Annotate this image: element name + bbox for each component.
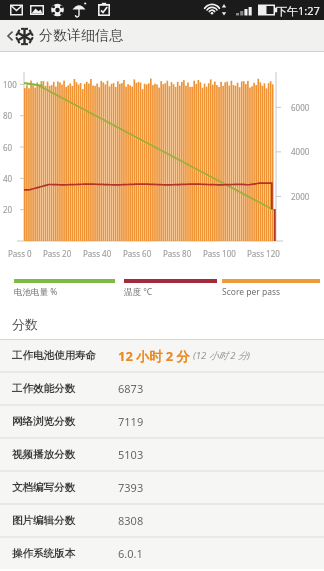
- staticText: 80: [3, 110, 13, 121]
- button[interactable]: 图片编辑分数: [0, 505, 324, 536]
- staticText: 分数详细信息: [39, 27, 123, 45]
- other: Back: [5, 27, 15, 45]
- staticText: 网络浏览分数: [12, 415, 75, 428]
- staticText: 6.0.1: [118, 546, 143, 561]
- staticText: 分数: [12, 316, 38, 332]
- staticText: 温度 °C: [124, 286, 153, 298]
- staticText: 60: [3, 142, 13, 153]
- staticText: 视频播放分数: [12, 448, 75, 461]
- staticText: 文档编写分数: [12, 481, 75, 494]
- staticText: Pass 120: [247, 248, 280, 259]
- button[interactable]: 视频播放分数: [0, 439, 324, 470]
- button[interactable]: 文档编写分数: [0, 472, 324, 503]
- staticText: 7119: [118, 414, 144, 429]
- staticText: 工作效能分数: [12, 382, 75, 395]
- staticText: 5103: [118, 447, 144, 462]
- staticText: 7393: [118, 480, 144, 495]
- staticText: Score per pass: [222, 286, 281, 298]
- staticText: 图片编辑分数: [12, 514, 75, 527]
- staticText: 操作系统版本: [12, 547, 75, 560]
- staticText: 工作电池使用寿命: [12, 349, 96, 362]
- staticText: Pass 100: [203, 248, 236, 259]
- staticText: 12 小时 2 分: [118, 347, 190, 365]
- staticText: 电池电量 %: [14, 286, 58, 298]
- staticText: 40: [3, 173, 13, 184]
- staticText: 20: [3, 204, 13, 215]
- staticText: 6000: [291, 102, 310, 113]
- button[interactable]: 工作效能分数: [0, 373, 324, 404]
- button[interactable]: 网络浏览分数: [0, 406, 324, 437]
- button[interactable]: 工作电池使用寿命: [0, 340, 324, 371]
- staticText: 8308: [118, 513, 144, 528]
- staticText: 6873: [118, 381, 144, 396]
- staticText: 下午1:27: [276, 3, 320, 18]
- staticText: Pass 40: [83, 248, 112, 259]
- staticText: Pass 80: [163, 248, 192, 259]
- staticText: 100: [3, 79, 17, 90]
- staticText: (12 小时 2 分): [193, 349, 251, 362]
- button[interactable]: Back: [0, 20, 324, 52]
- staticText: Pass 20: [43, 248, 72, 259]
- staticText: Pass 0: [8, 248, 32, 259]
- staticText: Pass 60: [123, 248, 152, 259]
- button[interactable]: 操作系统版本: [0, 538, 324, 569]
- staticText: 4000: [291, 146, 310, 157]
- staticText: 2000: [291, 191, 310, 202]
